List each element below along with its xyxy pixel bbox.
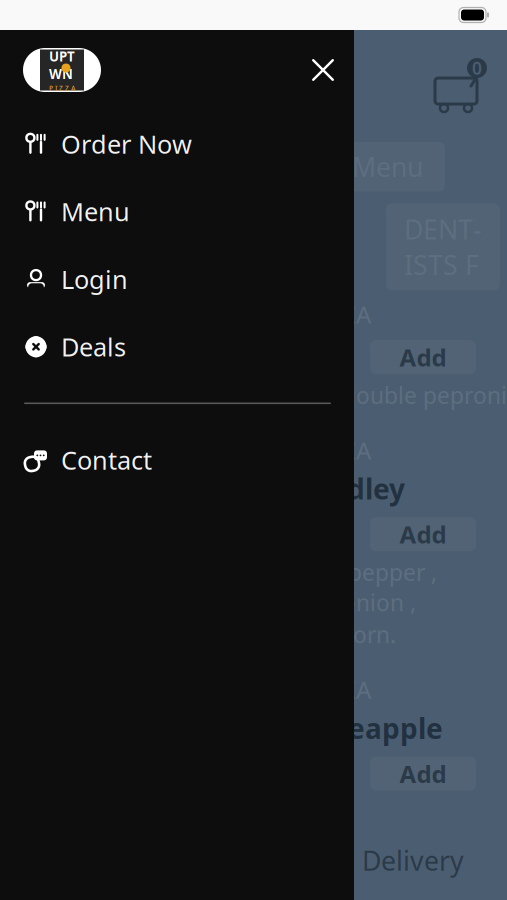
staticText: ZA [342,298,371,330]
staticText: Contact [61,443,152,477]
staticText: corn. [342,619,396,650]
button[interactable]: Deals [0,317,354,376]
staticText: Menu [352,149,423,184]
staticText: neapple [330,709,443,747]
button[interactable]: Menu [0,182,354,241]
staticText: 0 [472,56,482,79]
staticText: UPT WN [49,47,75,83]
button[interactable]: Close menu [300,47,346,93]
staticText: P I Z Z A [49,84,75,93]
staticText: Add [399,518,446,550]
staticText: ZA [342,674,371,705]
staticText: double peproni [342,380,507,410]
staticText: edley [330,470,405,507]
staticText: DENTISTS F [404,211,482,282]
button[interactable]: Contact [0,430,354,490]
staticText: Order Now [61,127,192,161]
staticText: Add [399,341,446,373]
button[interactable]: Uptown Pizza home [23,48,101,92]
button[interactable]: Add [370,757,476,791]
button[interactable]: Add [370,340,476,374]
button[interactable]: Add [370,517,476,551]
staticText: Delivery [362,843,464,878]
staticText: ,pepper , onion , [342,557,437,617]
button[interactable]: Cart [425,56,507,114]
staticText: Menu [61,195,130,228]
staticText: ZA [342,434,371,466]
staticText: Login [61,262,128,296]
button[interactable]: Login [0,249,354,309]
button[interactable]: Order Now [0,114,354,174]
staticText: Deals [61,330,126,363]
staticText: Add [399,758,446,790]
